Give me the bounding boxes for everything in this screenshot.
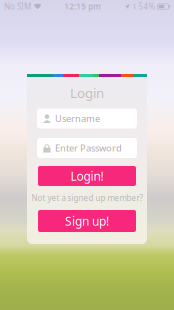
staticText: Login xyxy=(70,84,104,102)
staticText: 54% xyxy=(138,1,155,12)
button[interactable]: Username xyxy=(37,108,137,128)
button[interactable]: Enter Password xyxy=(37,138,137,158)
staticText: Not yet a signed up member? xyxy=(31,193,142,203)
button[interactable]: Login! xyxy=(38,166,136,186)
staticText: 12:15 pm xyxy=(64,1,101,12)
button[interactable]: Sign up! xyxy=(38,210,136,232)
staticText: Username xyxy=(55,112,100,125)
staticText: Enter Password xyxy=(55,142,122,154)
staticText: No SIM xyxy=(4,1,31,12)
staticText: Sign up! xyxy=(65,213,109,229)
staticText: Login! xyxy=(70,168,103,184)
